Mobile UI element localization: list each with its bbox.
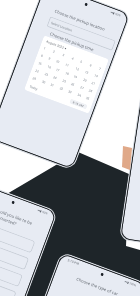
staticText: 6 [89,63,92,68]
staticText: 7 [98,67,102,71]
staticText: August 2022 ▾ [46,39,68,51]
staticText: 20 [82,78,88,83]
staticText: Choose the pickup time [29,24,114,60]
staticText: Choose the pickup location [37,3,122,39]
staticText: 18 [65,71,70,76]
staticText: 22 [35,69,40,74]
staticText: 8 [40,54,44,58]
staticText: 23 [44,72,49,77]
staticText: 2 [52,50,56,54]
staticText: 27 [80,85,85,90]
staticText: 8:15 AM [72,100,85,107]
staticText: 9 [48,56,51,61]
staticText: 29 [32,76,37,81]
staticText: 12 [75,66,80,72]
staticText: 35 [85,96,90,101]
staticText: 3 [62,53,65,57]
staticText: 33 [68,89,73,94]
staticText: What would you like to be converted? [0,200,41,235]
staticText: 19 [73,74,78,79]
staticText: 5 [80,60,83,64]
staticText: 31 [50,83,55,88]
staticText: Choose the type of car [55,269,139,296]
staticText: 14 [94,73,99,78]
staticText: Today [29,84,39,91]
staticText: 32 [59,86,64,91]
staticText: 17 [55,68,60,73]
staticText: 16 [47,65,52,70]
staticText: 30 [41,80,46,85]
staticText: 34 [77,93,82,98]
staticText: 15 [38,61,43,66]
staticText: 25 [62,79,67,84]
staticText: ▾▾▮ 100% [124,279,138,288]
staticText: 5:10 PM [67,258,79,266]
staticText: 1 [43,46,46,50]
staticText: 24 [53,75,58,80]
staticText: 4 [71,56,74,61]
staticText: 13 [84,70,89,75]
staticText: ▾▾▮ 93% [37,208,49,216]
staticText: 26 [70,82,75,87]
staticText: 21 [91,81,96,86]
staticText: ▾▾▮ 92% [110,10,122,18]
staticText: Select Location [50,21,73,33]
staticText: 11 [65,63,70,68]
staticText: 28 [88,88,93,93]
staticText: 10 [55,59,60,64]
